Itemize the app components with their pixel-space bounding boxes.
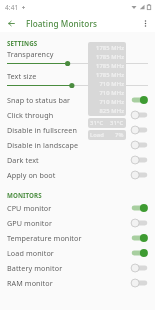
- staticText: 1785 MHz: [96, 62, 124, 70]
- button[interactable]: Dark text: [0, 152, 155, 167]
- button[interactable]: Text size: [0, 70, 155, 92]
- staticText: 31°C: [90, 119, 104, 127]
- staticText: Click through: [7, 110, 130, 120]
- staticText: RAM monitor: [7, 278, 130, 288]
- staticText: Temperature monitor: [7, 233, 130, 243]
- button[interactable]: Snap to status bar: [0, 92, 155, 107]
- button[interactable]: Disable in landscape: [0, 137, 155, 152]
- button[interactable]: GPU monitor: [0, 215, 155, 230]
- staticText: Snap to status bar: [7, 95, 130, 105]
- staticText: 7%: [115, 131, 124, 139]
- button[interactable]: RAM monitor: [0, 275, 155, 290]
- staticText: 710 MHz: [99, 89, 124, 97]
- staticText: 1785 MHz: [96, 53, 124, 61]
- staticText: 710 MHz: [99, 80, 124, 88]
- button[interactable]: Load monitor: [0, 245, 155, 260]
- button[interactable]: Back: [3, 15, 19, 31]
- button[interactable]: Battery monitor: [0, 260, 155, 275]
- staticText: 1785 MHz: [96, 44, 124, 52]
- button[interactable]: CPU monitor: [0, 200, 155, 215]
- staticText: Transparency: [7, 49, 54, 59]
- staticText: 31°C: [110, 119, 124, 127]
- staticText: GPU monitor: [7, 218, 130, 228]
- staticText: Floating Monitors: [26, 18, 98, 29]
- button[interactable]: More options: [137, 15, 153, 31]
- button[interactable]: Temperature monitor: [0, 230, 155, 245]
- staticText: Load monitor: [7, 248, 130, 258]
- staticText: Dark text: [7, 155, 130, 165]
- staticText: CPU monitor: [7, 203, 130, 213]
- staticText: MONITORS: [7, 191, 42, 199]
- button[interactable]: Click through: [0, 107, 155, 122]
- staticText: Disable in fullscreen: [7, 125, 130, 135]
- staticText: Apply on boot: [7, 170, 130, 180]
- staticText: 1785 MHz: [96, 71, 124, 79]
- button[interactable]: Disable in fullscreen: [0, 122, 155, 137]
- button[interactable]: Transparency: [0, 48, 155, 70]
- staticText: 825 MHz: [99, 107, 124, 115]
- staticText: Disable in landscape: [7, 140, 130, 150]
- staticText: SETTINGS: [7, 39, 38, 47]
- staticText: Text size: [7, 71, 37, 81]
- staticText: Battery monitor: [7, 263, 130, 273]
- staticText: 4:41: [5, 3, 19, 12]
- button[interactable]: Apply on boot: [0, 167, 155, 182]
- staticText: 710 MHz: [99, 98, 124, 106]
- staticText: Load: [90, 131, 104, 139]
